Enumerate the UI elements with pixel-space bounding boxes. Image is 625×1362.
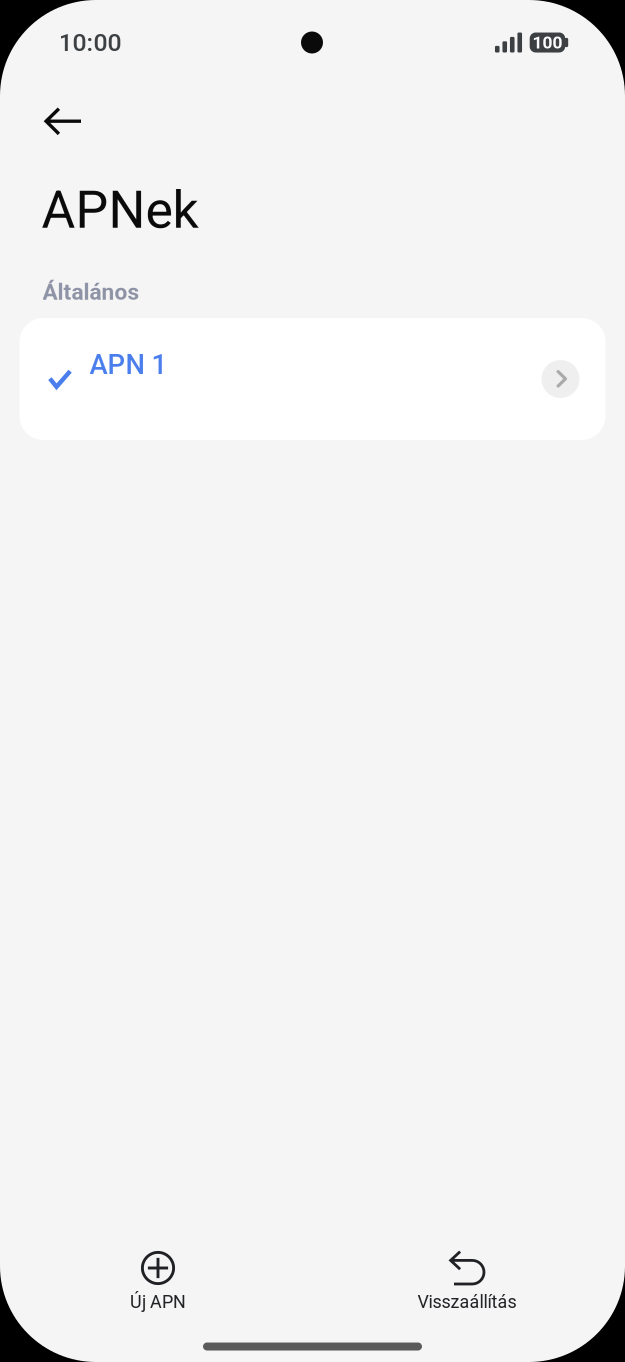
staticText: Általános bbox=[42, 279, 139, 305]
button[interactable]: Back bbox=[30, 88, 96, 154]
staticText: Új APN bbox=[130, 1291, 186, 1312]
button[interactable]: Visszaállítás bbox=[357, 1247, 577, 1323]
staticText: APNek bbox=[41, 180, 198, 240]
staticText: 10:00 bbox=[58, 28, 121, 57]
button[interactable]: Új APN bbox=[58, 1247, 258, 1323]
button[interactable]: APN 1 bbox=[19, 318, 605, 440]
staticText: 100 bbox=[532, 32, 562, 53]
staticText: APN 1 bbox=[89, 348, 167, 381]
staticText: Visszaállítás bbox=[417, 1291, 516, 1312]
